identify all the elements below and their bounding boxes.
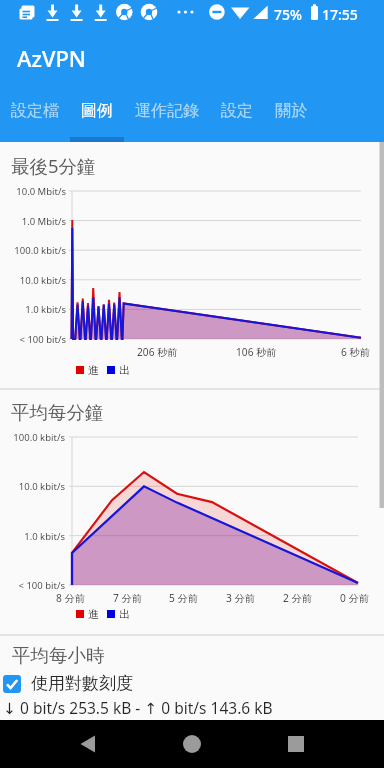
staticText: 75% — [274, 5, 302, 24]
staticText: 使用對數刻度 — [31, 673, 133, 694]
staticText: 1.0 Mbit/s — [21, 215, 66, 228]
button[interactable]: Home — [162, 720, 222, 768]
staticText: 10.0 kbit/s — [19, 274, 66, 287]
staticText: 平均每小時 — [12, 644, 105, 667]
staticText: 5 分前 — [169, 591, 198, 605]
staticText: AzVPN — [17, 43, 86, 73]
staticText: 206 秒前 — [137, 345, 178, 359]
staticText: 出 — [119, 607, 130, 621]
staticText: 17:55 — [322, 5, 358, 24]
staticText: 進 — [88, 363, 99, 377]
staticText: 圖例 — [81, 101, 113, 121]
button[interactable]: Back — [58, 720, 118, 768]
staticText: 7 分前 — [113, 591, 142, 605]
button[interactable]: 使用對數刻度 — [0, 673, 384, 694]
staticText: 設定檔 — [11, 101, 59, 121]
staticText: 2 分前 — [283, 591, 312, 605]
staticText: 平均每分鐘 — [11, 401, 104, 424]
staticText: 出 — [119, 363, 130, 377]
button[interactable]: 運作記錄 — [124, 98, 210, 142]
staticText: 100.0 kbit/s — [14, 244, 66, 257]
staticText: ↓ 0 bit/s 253.5 kB - ↑ 0 bit/s 143.6 kB — [3, 697, 273, 718]
staticText: < 100 bit/s — [19, 333, 66, 346]
staticText: 關於 — [275, 101, 307, 121]
button[interactable]: 圖例 — [70, 98, 124, 142]
staticText: 10.0 Mbit/s — [16, 185, 66, 198]
staticText: 106 秒前 — [236, 345, 277, 359]
button[interactable]: 關於 — [264, 98, 318, 142]
staticText: 設定 — [221, 101, 253, 121]
staticText: 100.0 kbit/s — [13, 431, 65, 444]
staticText: < 100 bit/s — [18, 579, 65, 592]
staticText: 1.0 kbit/s — [24, 530, 65, 543]
staticText: 1.0 kbit/s — [25, 303, 66, 316]
staticText: 10.0 kbit/s — [18, 480, 65, 493]
staticText: 6 秒前 — [341, 345, 370, 359]
button[interactable]: Recents — [262, 720, 322, 768]
staticText: 最後5分鐘 — [11, 153, 96, 178]
button[interactable]: 設定 — [210, 98, 264, 142]
staticText: 進 — [88, 607, 99, 621]
button[interactable]: 設定檔 — [0, 98, 70, 142]
staticText: 3 分前 — [226, 591, 255, 605]
staticText: 8 分前 — [56, 591, 85, 605]
staticText: 0 分前 — [340, 591, 369, 605]
staticText: 運作記錄 — [135, 101, 199, 121]
